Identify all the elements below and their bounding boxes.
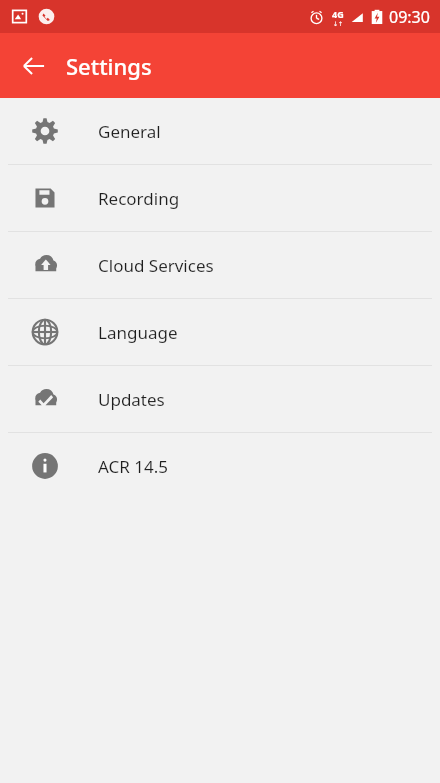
staticText: Updates bbox=[98, 388, 165, 411]
staticText: 09:30 bbox=[389, 6, 430, 28]
button[interactable]: General bbox=[0, 98, 440, 164]
staticText: ACR 14.5 bbox=[98, 455, 168, 478]
button[interactable]: Cloud Services bbox=[0, 232, 440, 298]
button[interactable]: Updates bbox=[0, 366, 440, 432]
staticText: Language bbox=[98, 321, 178, 344]
staticText: General bbox=[98, 120, 161, 143]
staticText: 4G bbox=[332, 8, 344, 20]
staticText: Recording bbox=[98, 187, 180, 210]
button[interactable]: Recording bbox=[0, 165, 440, 231]
staticText: Settings bbox=[66, 51, 152, 81]
button[interactable]: Language bbox=[0, 299, 440, 365]
staticText: Cloud Services bbox=[98, 254, 214, 277]
staticText: ↓↑ bbox=[333, 20, 344, 27]
button[interactable]: Back bbox=[12, 44, 56, 88]
button[interactable]: ACR 14.5 bbox=[0, 433, 440, 499]
